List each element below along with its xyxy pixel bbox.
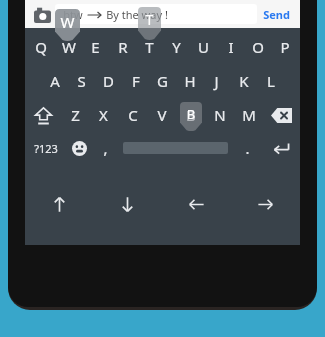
button[interactable]: , — [93, 132, 118, 164]
button[interactable]: H — [176, 64, 203, 98]
button[interactable]: S — [68, 64, 95, 98]
button[interactable]: F — [122, 64, 149, 98]
button[interactable]: E — [82, 30, 109, 64]
staticText: H — [184, 71, 196, 91]
staticText: ?123 — [34, 141, 58, 156]
staticText: S — [77, 71, 86, 91]
button[interactable]: V — [147, 98, 176, 132]
button[interactable]: X — [89, 98, 118, 132]
staticText: . — [245, 138, 250, 158]
staticText: K — [239, 71, 249, 91]
staticText: D — [103, 71, 114, 91]
button[interactable]: Y — [163, 30, 190, 64]
button[interactable]: N — [205, 98, 234, 132]
button[interactable]: O — [244, 30, 271, 64]
button[interactable]: J — [203, 64, 230, 98]
staticText: T — [145, 37, 154, 57]
button[interactable]: up — [25, 164, 93, 245]
button[interactable]: G — [149, 64, 176, 98]
staticText: E — [91, 37, 100, 57]
staticText: L — [267, 71, 275, 91]
button[interactable]: W — [55, 30, 82, 64]
staticText: V — [157, 105, 167, 125]
button[interactable]: Z — [61, 98, 89, 132]
button[interactable]: K — [230, 64, 257, 98]
button[interactable]: . — [232, 132, 262, 164]
button[interactable]: Send — [263, 7, 290, 22]
staticText: W — [62, 37, 76, 57]
staticText: , — [103, 138, 108, 158]
staticText: Send — [263, 7, 290, 22]
button[interactable]: Emoji — [66, 132, 93, 164]
staticText: Y — [172, 37, 181, 57]
button[interactable]: Shift — [25, 98, 61, 132]
button[interactable]: T — [136, 30, 163, 64]
staticText: T — [138, 10, 161, 29]
button[interactable]: I — [217, 30, 244, 64]
staticText: X — [99, 105, 108, 125]
staticText: G — [157, 71, 168, 91]
staticText: N — [214, 105, 226, 125]
button[interactable]: left — [162, 164, 231, 245]
staticText: A — [50, 71, 60, 91]
staticText: I — [228, 37, 234, 57]
staticText: btw — [63, 7, 83, 22]
button[interactable]: ?123 — [25, 132, 66, 164]
staticText: U — [198, 37, 209, 57]
button[interactable]: M — [234, 98, 263, 132]
button[interactable]: down — [93, 164, 162, 245]
button[interactable]: Space — [118, 132, 232, 164]
button[interactable]: Q — [27, 30, 55, 64]
staticText: J — [214, 71, 219, 91]
staticText: R — [118, 37, 128, 57]
button[interactable]: A — [41, 64, 68, 98]
button[interactable]: R — [109, 30, 136, 64]
button[interactable]: C — [118, 98, 147, 132]
staticText: Z — [71, 105, 80, 125]
button[interactable]: P — [271, 30, 298, 64]
button[interactable]: right — [231, 164, 300, 245]
staticText: F — [132, 71, 140, 91]
staticText: W — [55, 12, 80, 32]
staticText: M — [242, 105, 256, 125]
staticText: B — [180, 105, 202, 123]
staticText: B — [186, 105, 196, 125]
staticText: C — [128, 105, 138, 125]
button[interactable]: D — [95, 64, 122, 98]
button[interactable]: Backspace — [263, 98, 300, 132]
button[interactable]: Camera — [29, 1, 55, 27]
button[interactable]: B — [176, 98, 205, 132]
staticText: By the way ! — [106, 7, 168, 22]
staticText: P — [280, 37, 290, 57]
staticText: O — [252, 37, 264, 57]
staticText: Q — [35, 37, 47, 57]
button[interactable]: btw — [55, 4, 257, 24]
button[interactable]: L — [257, 64, 284, 98]
button[interactable]: Enter — [262, 132, 300, 164]
button[interactable]: U — [190, 30, 217, 64]
